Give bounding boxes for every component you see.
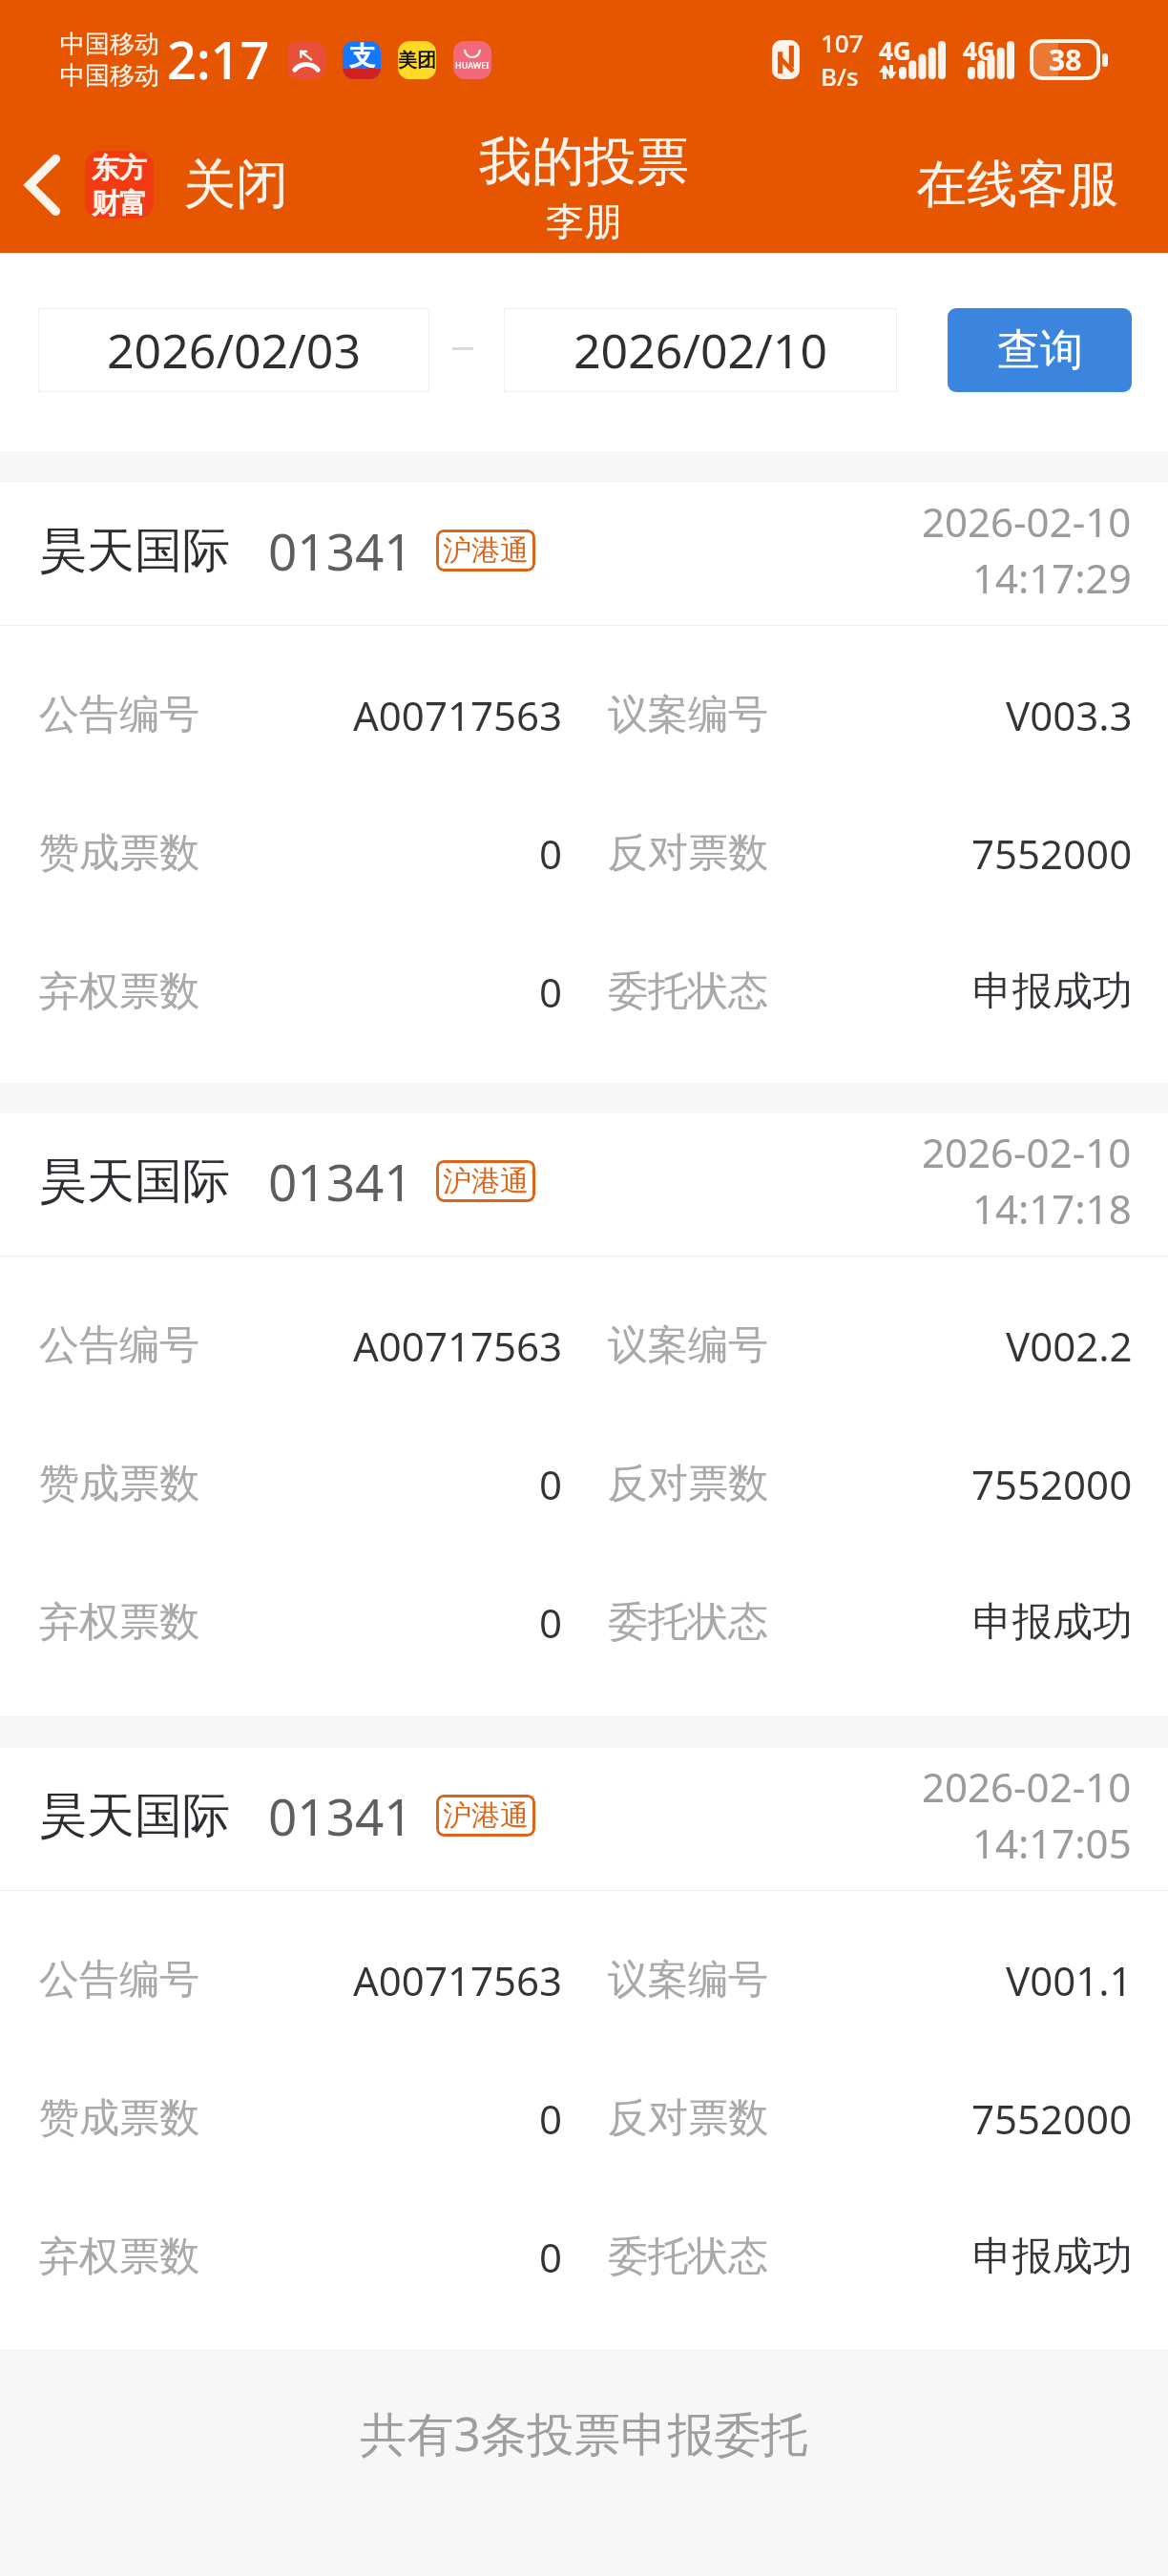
button[interactable]: Start date (38, 308, 429, 392)
staticText: 4G (963, 33, 995, 67)
staticText: 沪港通 (443, 532, 529, 569)
staticText: 共有3条投票申报委托 (0, 2401, 1168, 2465)
staticText: 委托状态 (608, 966, 768, 1017)
staticText: 0 (539, 1595, 563, 1650)
staticText: 关闭 (183, 152, 288, 218)
button[interactable]: 查询 (948, 308, 1132, 392)
staticText: 107 (821, 26, 864, 59)
staticText: 反对票数 (608, 828, 768, 879)
staticText: 0 (539, 2230, 563, 2284)
button[interactable]: End date (504, 308, 897, 392)
staticText: 沪港通 (443, 1797, 529, 1834)
staticText: 支 (349, 41, 375, 73)
staticText: 中国移动 (60, 29, 159, 60)
staticText: 申报成功 (972, 2232, 1133, 2282)
staticText: 弃权票数 (39, 966, 199, 1017)
staticText: 委托状态 (608, 1597, 768, 1648)
staticText: A00717563 (353, 1953, 563, 2007)
other: Back (25, 156, 59, 215)
staticText: 申报成功 (972, 966, 1133, 1017)
staticText: 沪港通 (443, 1163, 529, 1199)
staticText: 弃权票数 (39, 2232, 199, 2282)
staticText: 在线客服 (916, 153, 1118, 217)
staticText: 赞成票数 (39, 1459, 199, 1509)
staticText: 0 (539, 826, 563, 881)
staticText: 议案编号 (608, 1320, 768, 1371)
staticText: 中国移动 (60, 60, 159, 92)
staticText: 昊天国际 (39, 521, 230, 581)
staticText: 14:17:18 (972, 1181, 1132, 1236)
staticText: 反对票数 (608, 2093, 768, 2144)
staticText: 2026/02/10 (574, 318, 827, 383)
staticText: 4G (879, 33, 911, 67)
staticText: 委托状态 (608, 2232, 768, 2282)
staticText: 38 (1049, 40, 1082, 79)
staticText: A00717563 (353, 1319, 563, 1373)
staticText: 14:17:29 (972, 551, 1132, 605)
staticText: 赞成票数 (39, 2093, 199, 2144)
staticText: V001.1 (1006, 1953, 1133, 2007)
staticText: B/s (821, 59, 859, 93)
staticText: 7552000 (971, 826, 1133, 881)
staticText: 01341 (268, 1781, 413, 1850)
staticText: 美团 (398, 49, 436, 73)
button[interactable]: 昊天国际 (0, 483, 1168, 1083)
staticText: 0 (539, 2091, 563, 2146)
staticText: 公告编号 (39, 1955, 199, 2005)
staticText: 2026-02-10 (922, 494, 1132, 549)
staticText: 14:17:05 (972, 1816, 1132, 1870)
staticText: 2026/02/03 (107, 318, 361, 383)
staticText: 01341 (268, 516, 413, 585)
staticText: 赞成票数 (39, 828, 199, 879)
staticText: 弃权票数 (39, 1597, 199, 1648)
staticText: 7552000 (971, 1457, 1133, 1511)
button[interactable]: Back (0, 151, 303, 218)
staticText: 昊天国际 (39, 1786, 230, 1846)
staticText: 7552000 (971, 2091, 1133, 2146)
other: NFC (772, 40, 800, 79)
button[interactable]: 在线客服 (887, 137, 1168, 232)
staticText: 2026-02-10 (922, 1125, 1132, 1179)
staticText: 反对票数 (608, 1459, 768, 1509)
staticText: 议案编号 (608, 1955, 768, 2005)
staticText: HUAWEI (455, 59, 490, 71)
staticText: 我的投票 (479, 129, 689, 195)
staticText: 李朋 (546, 197, 622, 245)
staticText: 财富 (92, 186, 147, 218)
staticText: A00717563 (353, 688, 563, 742)
staticText: V003.3 (1006, 688, 1133, 742)
staticText: 2026-02-10 (922, 1759, 1132, 1814)
staticText: 查询 (997, 323, 1083, 378)
staticText: 01341 (268, 1147, 413, 1215)
staticText: 昊天国际 (39, 1152, 230, 1212)
staticText: 申报成功 (972, 1597, 1133, 1648)
staticText: 0 (539, 965, 563, 1019)
staticText: 公告编号 (39, 1320, 199, 1371)
staticText: 议案编号 (608, 690, 768, 740)
staticText: 东方 (92, 151, 147, 186)
staticText: 0 (539, 1457, 563, 1511)
staticText: V002.2 (1006, 1319, 1133, 1373)
staticText: 公告编号 (39, 690, 199, 740)
button[interactable]: 昊天国际 (0, 1748, 1168, 2349)
staticText: 2:17 (167, 24, 270, 94)
button[interactable]: 昊天国际 (0, 1113, 1168, 1715)
